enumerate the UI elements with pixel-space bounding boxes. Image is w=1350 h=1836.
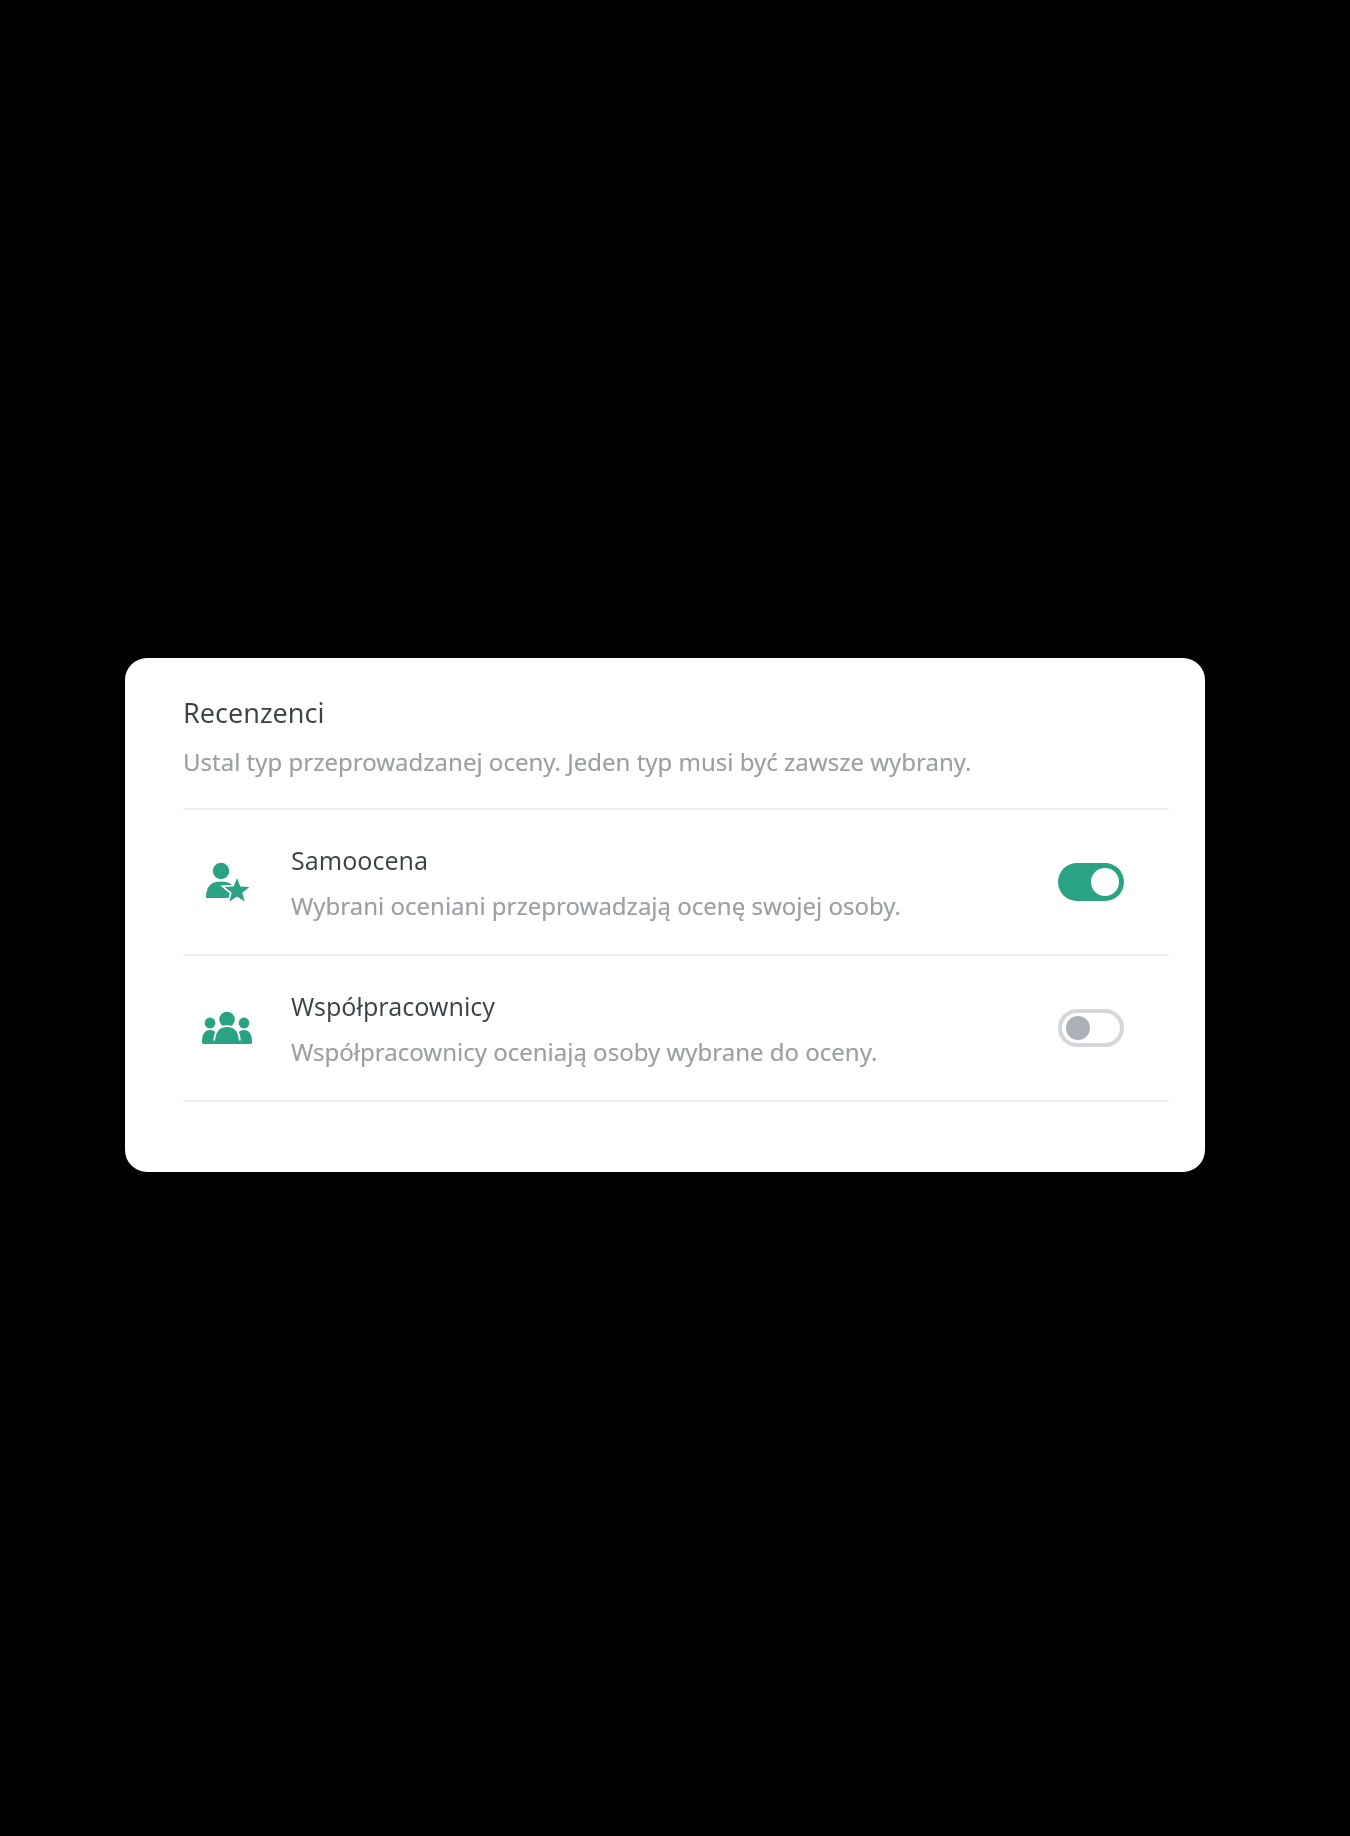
button[interactable]: Self assessment <box>125 810 1205 954</box>
button[interactable]: Coworkers <box>125 956 1205 1100</box>
staticText: Wybrani oceniani przeprowadzają ocenę sw… <box>291 889 902 922</box>
other: Self assessment <box>201 856 253 908</box>
staticText: Współpracownicy oceniają osoby wybrane d… <box>291 1035 878 1068</box>
other: Coworkers <box>201 1002 253 1054</box>
staticText: Samoocena <box>291 843 428 877</box>
button[interactable]: Enabled toggle <box>1045 851 1137 913</box>
staticText: Ustal typ przeprowadzanej oceny. Jeden t… <box>183 745 972 778</box>
button[interactable]: Disabled toggle <box>1045 997 1137 1059</box>
staticText: Współpracownicy <box>291 989 496 1023</box>
staticText: Recenzenci <box>183 694 325 731</box>
